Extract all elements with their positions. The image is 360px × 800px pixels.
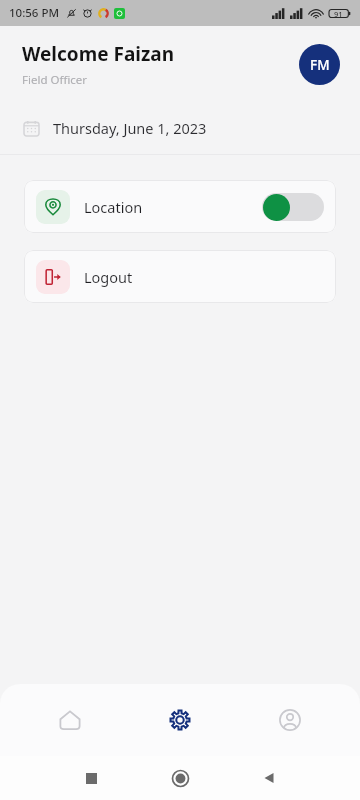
- staticText: Welcome Faizan: [22, 41, 175, 67]
- staticText: Location: [84, 197, 143, 217]
- button[interactable]: Profile avatar FM: [299, 44, 340, 85]
- button[interactable]: Home: [30, 692, 110, 748]
- staticText: Thursday, June 1, 2023: [53, 118, 207, 138]
- button[interactable]: Profile: [250, 692, 330, 748]
- staticText: 10:56 PM: [9, 5, 60, 21]
- button[interactable]: Logout: [24, 250, 336, 303]
- button[interactable]: Recents: [74, 761, 108, 795]
- button[interactable]: Home: [163, 761, 197, 795]
- button[interactable]: Back: [252, 761, 286, 795]
- button[interactable]: Location: [24, 180, 336, 233]
- staticText: 91: [334, 9, 343, 19]
- staticText: Field Officer: [22, 72, 88, 88]
- button[interactable]: Location toggle: [262, 193, 324, 221]
- staticText: FM: [310, 56, 330, 74]
- button[interactable]: Settings: [140, 692, 220, 748]
- staticText: Logout: [84, 267, 133, 287]
